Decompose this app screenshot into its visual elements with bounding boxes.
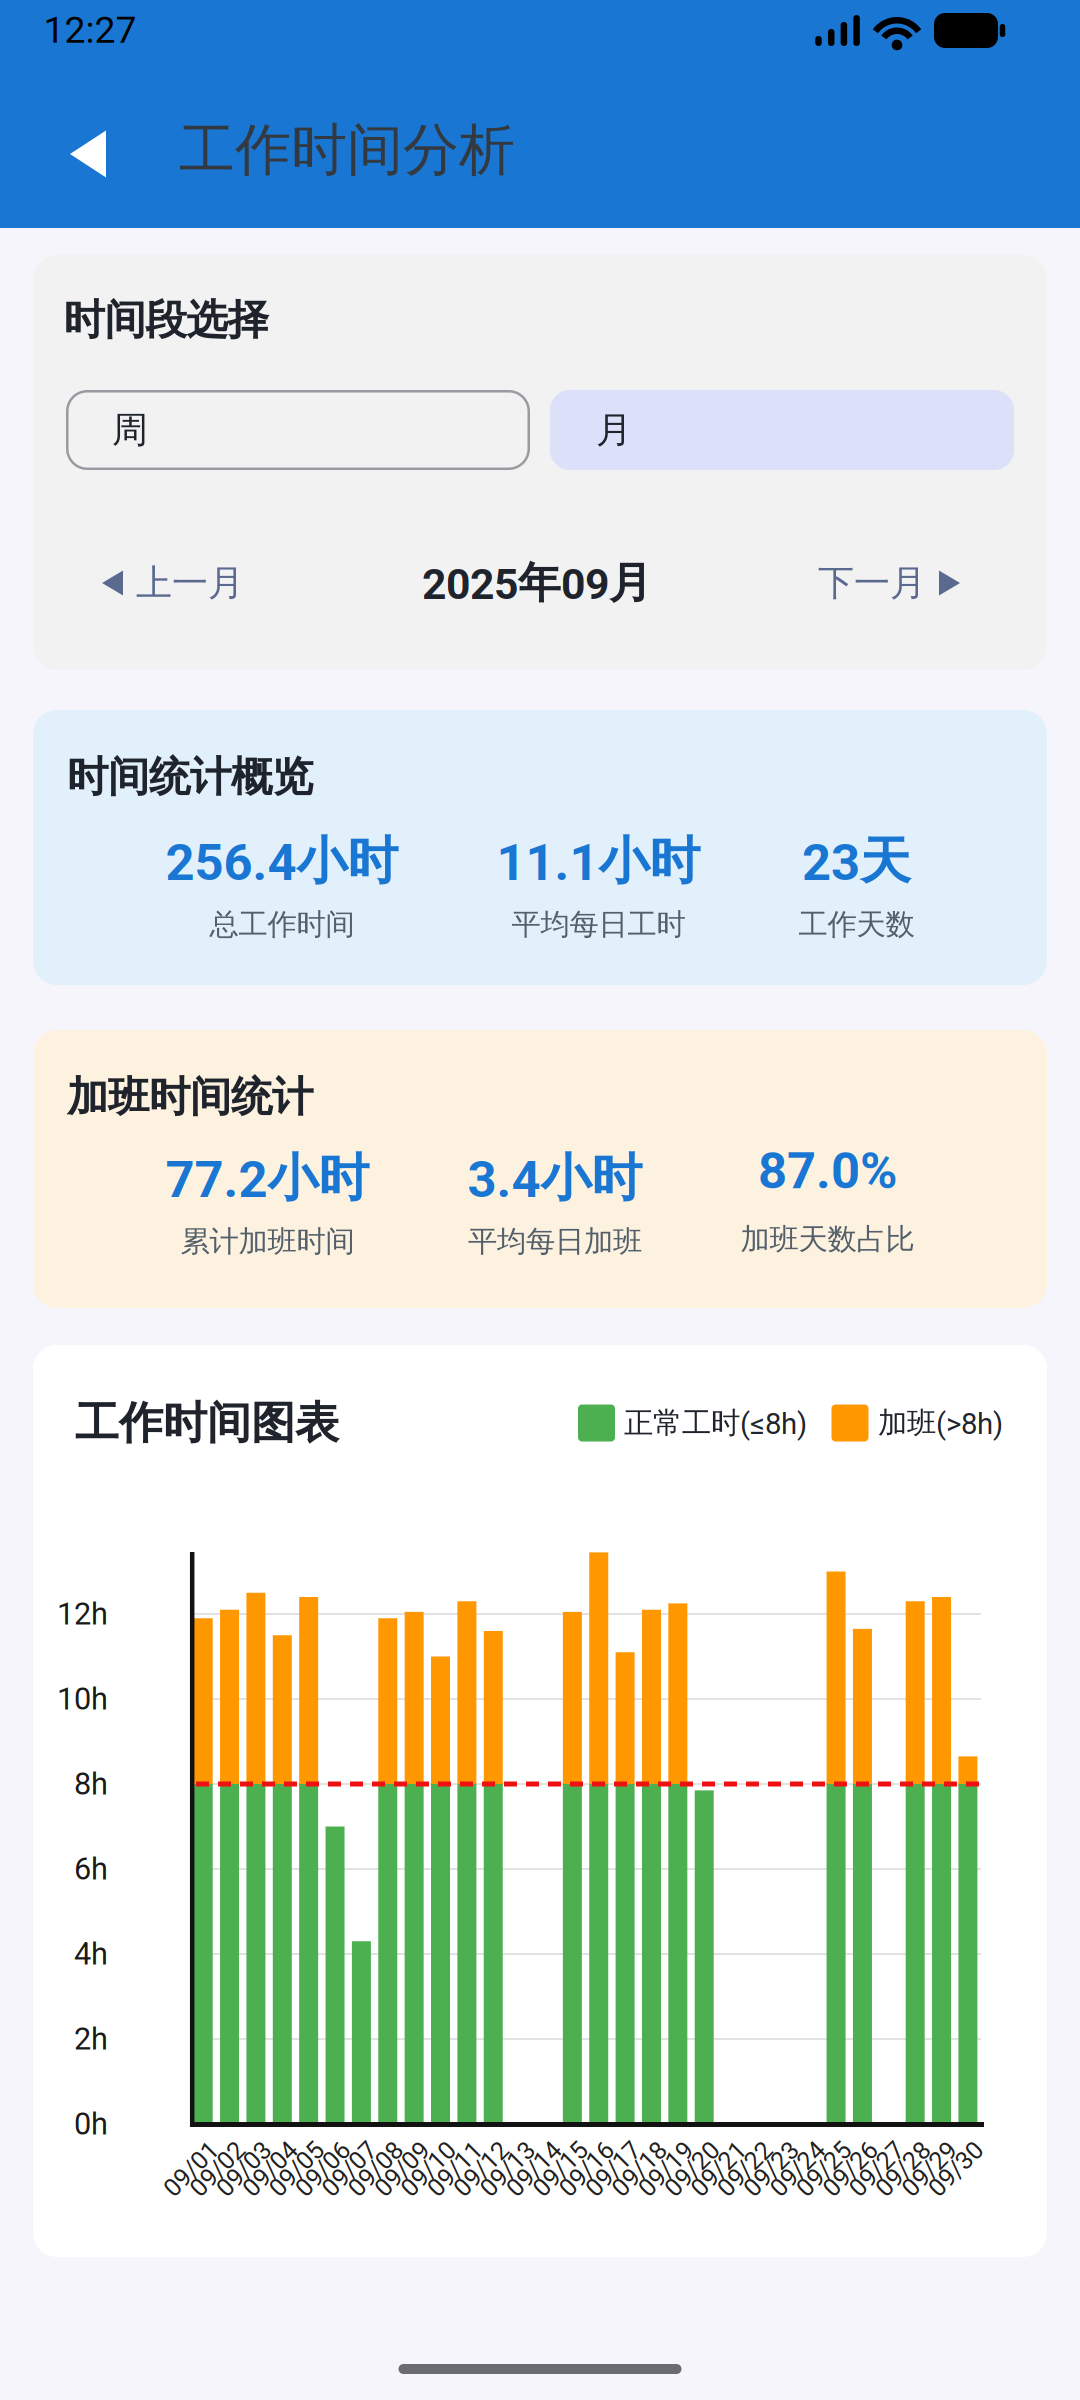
staticText: 加班时间统计 (67, 1071, 313, 1123)
staticText: 256.4小时 (165, 829, 398, 893)
staticText: 总工作时间 (209, 906, 354, 943)
staticText: 09/24 (765, 2154, 831, 2184)
staticText: 09/30 (923, 2154, 989, 2184)
staticText: 09/05 (264, 2154, 330, 2184)
staticText: 工作天数 (798, 906, 914, 943)
staticText: 周 (112, 407, 148, 453)
staticText: 09/26 (817, 2154, 883, 2184)
staticText: 09/07 (316, 2154, 382, 2184)
staticText: 09/25 (791, 2154, 857, 2184)
staticText: 09/27 (844, 2154, 910, 2184)
staticText: 12h (57, 1596, 108, 1632)
button[interactable]: Back (54, 120, 122, 187)
staticText: 09/29 (896, 2154, 962, 2184)
staticText: 2h (74, 2021, 108, 2057)
button[interactable]: 月 (550, 390, 1014, 470)
staticText: 09/28 (870, 2154, 936, 2184)
staticText: 87.0% (758, 1141, 897, 1201)
staticText: 09/14 (501, 2154, 567, 2184)
staticText: 4h (74, 1936, 108, 1972)
staticText: 09/08 (343, 2154, 409, 2184)
staticText: 12:27 (43, 8, 136, 52)
staticText: 下一月 (818, 560, 926, 606)
staticText: 10h (57, 1681, 108, 1717)
staticText: 09/15 (527, 2154, 593, 2184)
button[interactable]: 下一月 (818, 560, 960, 606)
staticText: 0h (74, 2106, 108, 2142)
staticText: 11.1小时 (496, 829, 700, 893)
staticText: 09/21 (686, 2154, 752, 2184)
staticText: 09/13 (475, 2154, 541, 2184)
staticText: 平均每日工时 (511, 906, 685, 943)
staticText: 09/12 (448, 2154, 514, 2184)
staticText: 加班(>8h) (878, 1404, 1003, 1441)
staticText: 2025年09月 (422, 556, 652, 610)
button[interactable]: 上一月 (102, 560, 244, 606)
staticText: 09/10 (395, 2154, 461, 2184)
staticText: 工作时间图表 (75, 1395, 339, 1451)
staticText: 09/06 (290, 2154, 356, 2184)
staticText: 09/09 (369, 2154, 435, 2184)
staticText: 工作时间分析 (179, 115, 515, 185)
staticText: 09/02 (185, 2154, 251, 2184)
staticText: 月 (596, 407, 632, 453)
staticText: 09/11 (422, 2154, 488, 2184)
staticText: 09/18 (606, 2154, 672, 2184)
staticText: 09/04 (237, 2154, 303, 2184)
staticText: 平均每日加班 (468, 1223, 642, 1260)
staticText: 累计加班时间 (180, 1223, 354, 1260)
staticText: 正常工时(≤8h) (624, 1404, 807, 1441)
staticText: 09/23 (738, 2154, 804, 2184)
staticText: 09/01 (158, 2154, 224, 2184)
staticText: 09/16 (554, 2154, 620, 2184)
staticText: 77.2小时 (165, 1146, 369, 1210)
button[interactable]: 周 (66, 390, 530, 470)
staticText: 09/22 (712, 2154, 778, 2184)
staticText: 加班天数占比 (740, 1221, 914, 1258)
staticText: 09/03 (211, 2154, 277, 2184)
staticText: 上一月 (136, 560, 244, 606)
staticText: 23天 (802, 829, 911, 893)
staticText: 09/19 (633, 2154, 699, 2184)
staticText: 时间统计概览 (67, 751, 313, 803)
staticText: 8h (74, 1766, 108, 1802)
staticText: 6h (74, 1851, 108, 1887)
staticText: 09/17 (580, 2154, 646, 2184)
staticText: 3.4小时 (467, 1146, 642, 1210)
staticText: 时间段选择 (63, 294, 268, 346)
staticText: 09/20 (659, 2154, 725, 2184)
